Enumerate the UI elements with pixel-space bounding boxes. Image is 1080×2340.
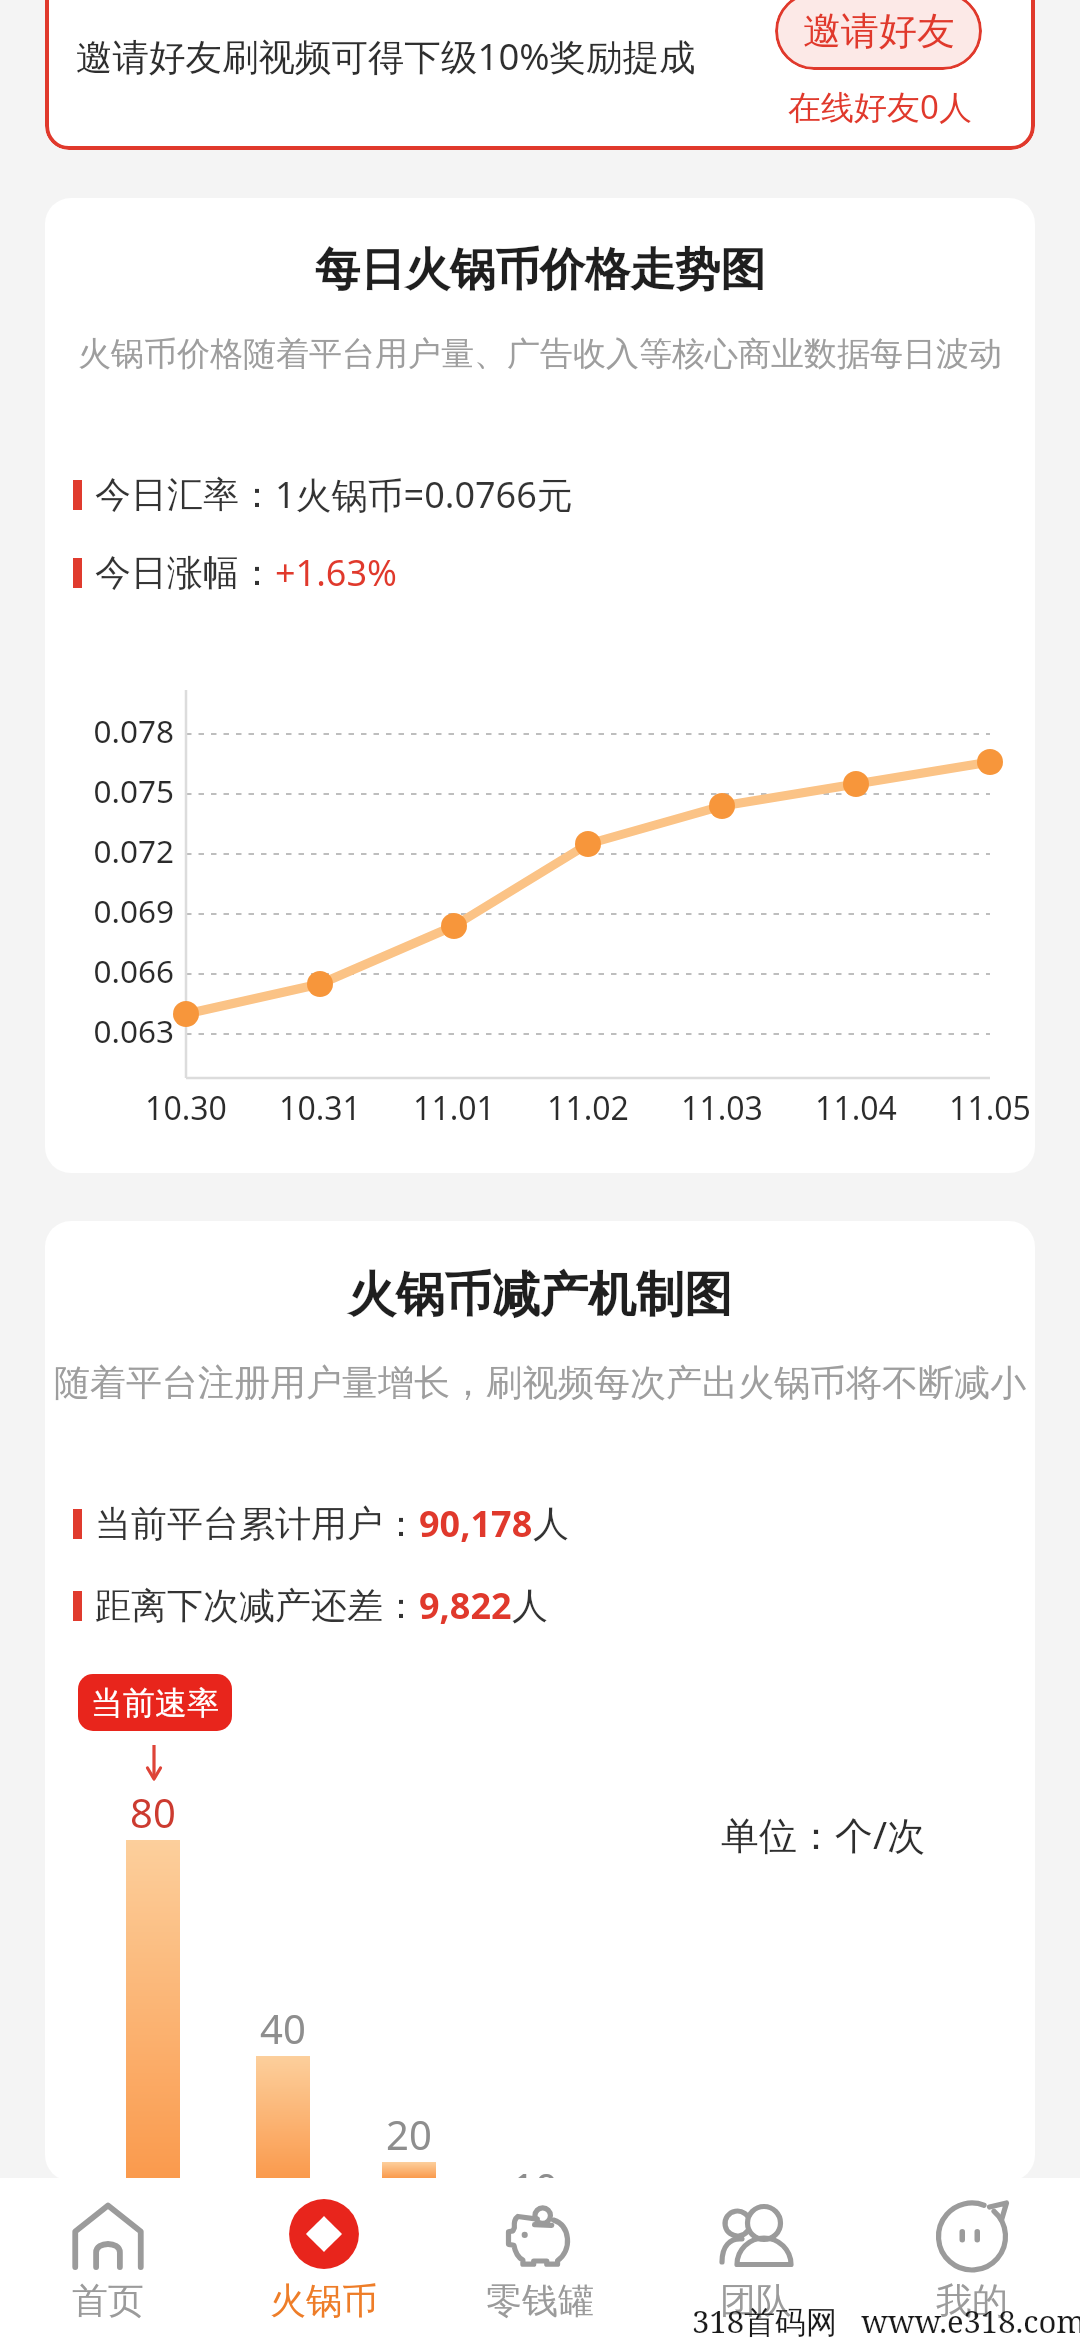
staticText: 11.05 xyxy=(935,1086,1035,1130)
button[interactable]: 首页 xyxy=(0,2178,216,2340)
staticText: 40 xyxy=(243,2001,323,2055)
staticText: 11.01 xyxy=(399,1086,509,1130)
button[interactable]: 团队 xyxy=(648,2178,864,2340)
staticText: 团队 xyxy=(720,2278,792,2323)
staticText: 零钱罐 xyxy=(486,2278,594,2323)
staticText: 随着平台注册用户量增长，刷视频每次产出火锅币将不断减小 xyxy=(45,1360,1035,1405)
staticText: 单位：个/次 xyxy=(721,1808,926,1860)
button[interactable]: 零钱罐 xyxy=(432,2178,648,2340)
staticText: 10 xyxy=(495,2160,575,2181)
staticText: 火锅币 xyxy=(270,2278,378,2323)
staticText: 11.04 xyxy=(801,1086,911,1130)
staticText: 当前平台累计用户： xyxy=(95,1501,419,1546)
staticText: 0.078 xyxy=(71,709,174,752)
staticText: 我的 xyxy=(936,2278,1008,2323)
staticText: 首页 xyxy=(72,2278,144,2323)
staticText: 80 xyxy=(113,1785,193,1839)
staticText: 0.069 xyxy=(71,889,174,932)
staticText: 当前速率 xyxy=(91,1683,219,1723)
button[interactable]: 邀请好友刷视频可得下级10%奖励提成 xyxy=(45,0,1035,150)
staticText: 人 xyxy=(533,1501,569,1546)
button[interactable]: 火锅币 xyxy=(216,2178,432,2340)
staticText: 今日涨幅： xyxy=(95,550,275,595)
staticText: 0.066 xyxy=(71,949,174,992)
staticText: 9,822 xyxy=(419,1581,512,1630)
staticText: 90,178 xyxy=(419,1499,533,1548)
staticText: 11.03 xyxy=(667,1086,777,1130)
button[interactable]: 邀请好友 xyxy=(775,0,982,70)
staticText: 0.063 xyxy=(71,1009,174,1052)
staticText: 火锅币价格随着平台用户量、广告收入等核心商业数据每日波动 xyxy=(45,333,1035,375)
staticText: 距离下次减产还差： xyxy=(95,1583,419,1628)
staticText: 10.30 xyxy=(131,1086,241,1130)
staticText: 火锅币减产机制图 xyxy=(45,1265,1035,1325)
staticText: 在线好友0人 xyxy=(788,84,972,129)
staticText: +1.63% xyxy=(275,548,397,597)
staticText: 今日汇率： xyxy=(95,472,275,517)
staticText: 1火锅币=0.0766元 xyxy=(275,470,573,519)
staticText: 318首码网 www.e318.com xyxy=(692,2300,1080,2340)
staticText: 邀请好友刷视频可得下级10%奖励提成 xyxy=(76,31,696,81)
staticText: 11.02 xyxy=(533,1086,643,1130)
staticText: 邀请好友 xyxy=(803,7,955,55)
staticText: 0.075 xyxy=(71,769,174,812)
staticText: 人 xyxy=(512,1583,548,1628)
staticText: 10.31 xyxy=(265,1086,375,1130)
staticText: 每日火锅币价格走势图 xyxy=(45,242,1035,299)
staticText: 20 xyxy=(369,2107,449,2161)
staticText: 0.072 xyxy=(71,829,174,872)
button[interactable]: 我的 xyxy=(864,2178,1080,2340)
